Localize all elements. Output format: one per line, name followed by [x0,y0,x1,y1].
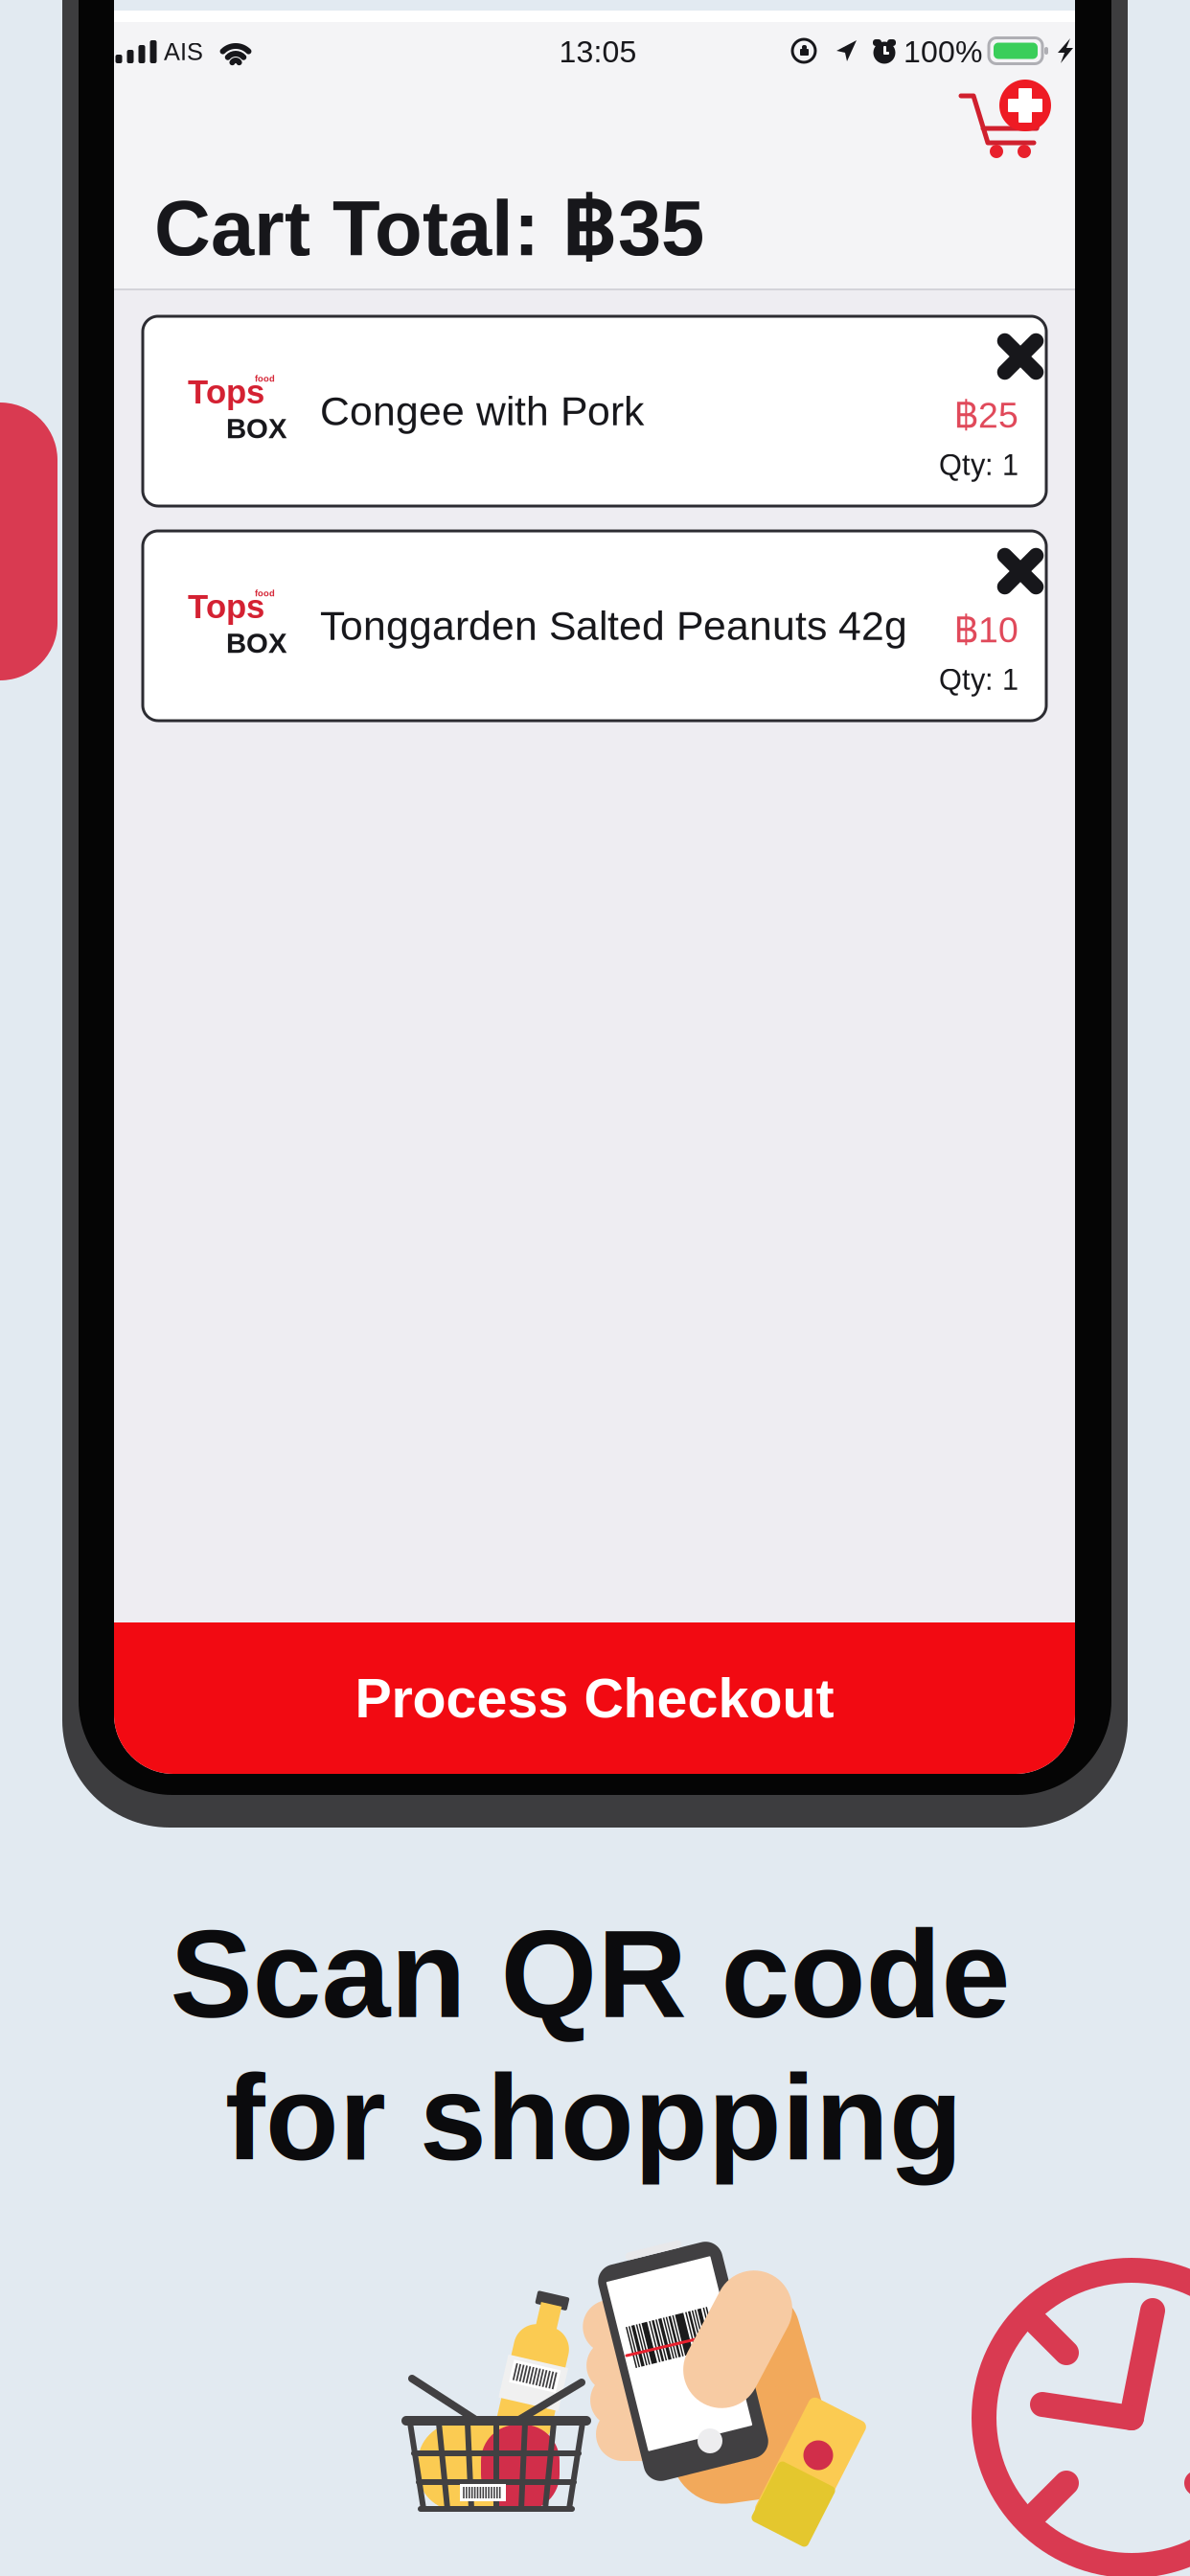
staticText: for shopping [225,2051,963,2185]
staticText: Qty: 1 [939,448,1018,481]
staticText: Qty: 1 [939,663,1018,696]
staticText: 100% [904,35,982,69]
button[interactable]: Process Checkout [114,1622,1075,1774]
staticText: Tops [188,588,264,625]
staticText: Cart Total: ฿35 [154,168,704,279]
button[interactable]: Add to cart [114,0,1075,1774]
staticText: food [255,374,275,384]
staticText: BOX [226,413,287,444]
staticText: ฿25 [954,386,1018,438]
staticText: Tonggarden Salted Peanuts 42g [320,603,907,649]
staticText: Scan QR code [170,1905,1010,2043]
staticText: Process Checkout [355,1667,834,1729]
button[interactable]: Tops [143,316,1046,506]
staticText: BOX [226,627,287,659]
staticText: 13:05 [559,35,637,69]
staticText: ฿10 [954,601,1018,652]
staticText: Tops [188,373,264,410]
staticText: AIS [164,38,203,65]
staticText: Congee with Pork [320,388,644,434]
button[interactable]: Tops [143,531,1046,721]
staticText: food [255,588,275,598]
